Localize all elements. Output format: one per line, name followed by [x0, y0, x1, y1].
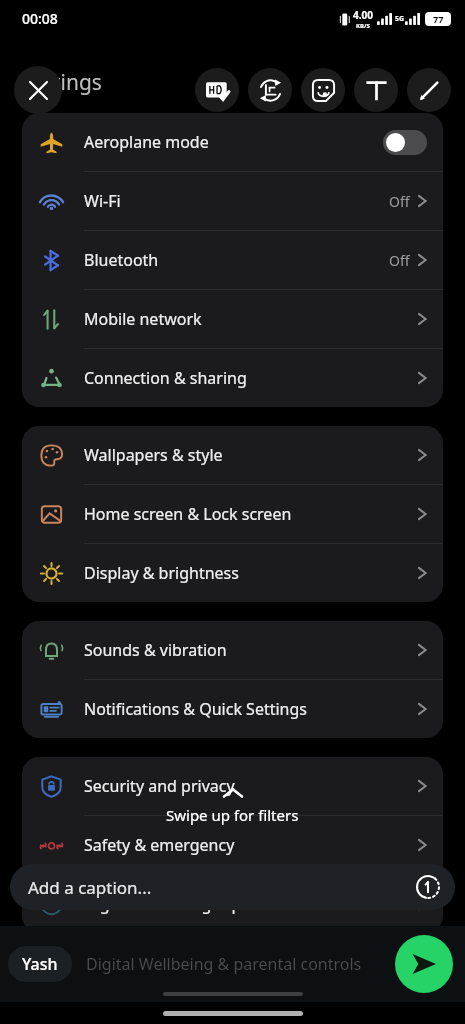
button[interactable]: HD quality	[195, 68, 239, 112]
button[interactable]: Aeroplane mode toggle	[383, 130, 427, 155]
staticText: Wi-Fi	[84, 190, 121, 212]
button[interactable]: Wallpapers & style	[22, 426, 443, 484]
staticText: Bluetooth	[84, 249, 159, 271]
button[interactable]: Close	[14, 66, 62, 114]
button[interactable]: Digital Wellbeing & parental controls	[22, 875, 443, 933]
staticText: Off	[389, 251, 410, 270]
button[interactable]: Sticker	[301, 68, 345, 112]
button[interactable]: Crop and rotate	[248, 68, 292, 112]
button[interactable]: Send	[395, 935, 453, 993]
staticText: Swipe up for filters	[166, 805, 299, 825]
staticText: Connection & sharing	[84, 367, 247, 389]
staticText: Mobile network	[84, 308, 202, 330]
staticText: Sounds & vibration	[84, 639, 227, 661]
button[interactable]: Connection & sharing	[22, 349, 443, 407]
staticText: Yash	[22, 953, 58, 975]
button[interactable]: Add text	[354, 68, 398, 112]
button[interactable]: Yash	[8, 946, 72, 982]
button[interactable]: Draw	[407, 68, 451, 112]
staticText: 5G	[395, 14, 405, 24]
staticText: Home screen & Lock screen	[84, 503, 292, 525]
staticText: KB/S	[356, 22, 370, 30]
button[interactable]: Display & brightness	[22, 544, 443, 602]
staticText: Add a caption...	[28, 876, 152, 899]
button[interactable]: Add a caption...	[10, 864, 455, 910]
button[interactable]: Wi-Fi	[22, 172, 443, 230]
button[interactable]: Bluetooth	[22, 231, 443, 289]
staticText: Wallpapers & style	[84, 444, 223, 466]
staticText: 4.00	[353, 8, 373, 22]
staticText: Settings	[22, 68, 102, 97]
button[interactable]: View once	[415, 874, 441, 900]
button[interactable]: Safety & emergency	[22, 816, 443, 874]
staticText: Display & brightness	[84, 562, 239, 584]
button[interactable]: Notifications & Quick Settings	[22, 680, 443, 738]
staticText: Safety & emergency	[84, 834, 235, 856]
button[interactable]: Mobile network	[22, 290, 443, 348]
staticText: 00:08	[22, 9, 58, 28]
button[interactable]: Home screen & Lock screen	[22, 485, 443, 543]
staticText: 77	[433, 13, 444, 25]
button[interactable]: Aeroplane mode	[22, 113, 443, 171]
staticText: Digital Wellbeing & parental controls	[86, 953, 362, 975]
staticText: Off	[389, 192, 410, 211]
staticText: Aeroplane mode	[84, 131, 209, 153]
button[interactable]: Sounds & vibration	[22, 621, 443, 679]
staticText: Notifications & Quick Settings	[84, 698, 307, 720]
staticText: Digital Wellbeing & parental controls	[84, 893, 360, 915]
staticText: Security and privacy	[84, 775, 235, 797]
button[interactable]: Security and privacy	[22, 757, 443, 815]
